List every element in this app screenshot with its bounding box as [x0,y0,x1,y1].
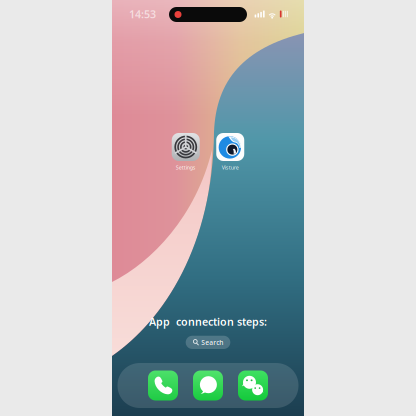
button[interactable]: Messages [193,370,223,400]
button[interactable]: Phone [148,370,178,400]
button[interactable]: Settings [163,133,208,171]
button[interactable]: Search [186,336,230,349]
staticText: Visture [222,164,239,171]
staticText: 14:53 [129,7,156,21]
staticText: App connection steps: [149,315,267,329]
staticText: Search [201,338,223,347]
button[interactable]: WeChat [238,370,268,400]
staticText: Settings [176,164,196,171]
button[interactable]: Visture [208,133,252,171]
